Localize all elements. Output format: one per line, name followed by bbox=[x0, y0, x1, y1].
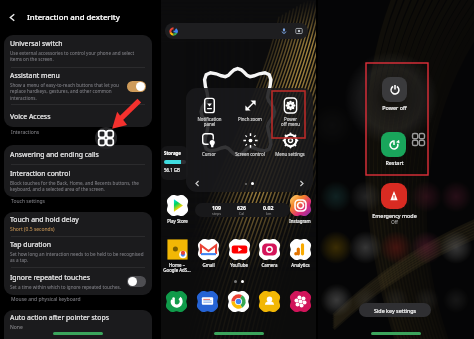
staticText: Restart bbox=[385, 159, 404, 166]
button[interactable]: Assistant menu bbox=[95, 127, 117, 149]
staticText: Cursor bbox=[202, 151, 216, 157]
staticText: Touch and hold delay bbox=[10, 215, 79, 224]
staticText: Show a menu of easy-to-reach buttons tha… bbox=[10, 82, 122, 102]
button[interactable]: Contacts bbox=[259, 291, 280, 312]
button[interactable]: Google bbox=[165, 23, 308, 39]
staticText: Notification panel bbox=[197, 116, 222, 127]
button[interactable]: Power off menu bbox=[272, 97, 308, 127]
staticText: Screen control bbox=[235, 151, 265, 157]
button[interactable]: Auto action after pointer stops bbox=[4, 310, 152, 334]
button[interactable]: Ignore repeated touches bbox=[4, 268, 152, 295]
button[interactable]: Tap duration bbox=[4, 237, 152, 267]
button[interactable]: Answering and ending calls bbox=[4, 145, 152, 164]
button[interactable]: Menu settings bbox=[272, 132, 308, 157]
button[interactable]: Toggle bbox=[127, 81, 146, 92]
staticText: Emergency mode bbox=[372, 212, 417, 219]
staticText: Tap duration bbox=[10, 240, 51, 249]
staticText: Interaction control bbox=[10, 169, 71, 178]
button[interactable]: Assistant menu bbox=[412, 133, 425, 146]
button[interactable]: Power off bbox=[382, 77, 407, 102]
staticText: Menu settings bbox=[275, 151, 305, 157]
staticText: Set a time within which to ignore repeat… bbox=[10, 284, 121, 290]
button[interactable]: Phone bbox=[166, 291, 187, 312]
button[interactable]: Universal switch bbox=[4, 35, 152, 67]
staticText: Gmail bbox=[202, 262, 215, 268]
button[interactable]: Screen control bbox=[232, 132, 268, 157]
staticText: Power off bbox=[382, 104, 407, 111]
button[interactable]: Analytics bbox=[285, 239, 315, 268]
button[interactable]: Next page bbox=[297, 179, 306, 188]
staticText: Cal bbox=[239, 211, 245, 216]
button[interactable]: Chrome bbox=[228, 291, 249, 312]
staticText: Play Store bbox=[167, 218, 188, 224]
button[interactable]: YouTube bbox=[224, 239, 254, 268]
staticText: Instagram bbox=[289, 218, 311, 224]
button[interactable]: Notification panel bbox=[191, 97, 227, 127]
button[interactable]: Navigate up bbox=[0, 0, 156, 34]
button[interactable]: Cursor bbox=[191, 132, 227, 157]
staticText: 109 bbox=[212, 204, 221, 211]
button[interactable]: Gallery bbox=[290, 291, 311, 312]
button[interactable]: Previous page bbox=[193, 179, 202, 188]
staticText: Auto action after pointer stops bbox=[10, 313, 109, 322]
button[interactable]: Camera bbox=[254, 239, 284, 268]
staticText: Assistant menu bbox=[10, 71, 60, 80]
staticText: Interaction and dexterity bbox=[27, 12, 120, 23]
button[interactable]: Home – Google AdS... bbox=[162, 239, 192, 274]
button[interactable]: Messages bbox=[197, 291, 218, 312]
button[interactable]: Touch and hold delay bbox=[4, 212, 152, 236]
staticText: None bbox=[10, 324, 23, 331]
staticText: Set how long an interaction needs to be … bbox=[10, 251, 146, 264]
staticText: steps bbox=[212, 211, 221, 216]
staticText: 0.02 bbox=[263, 204, 274, 211]
staticText: Off bbox=[391, 219, 398, 225]
button[interactable]: Voice Access bbox=[4, 105, 152, 127]
staticText: Home – Google AdS... bbox=[163, 262, 191, 274]
button[interactable]: Voice search bbox=[280, 27, 288, 35]
staticText: Voice Access bbox=[10, 112, 51, 121]
button[interactable]: 109 bbox=[195, 203, 290, 217]
button[interactable]: Restart bbox=[381, 132, 406, 157]
staticText: Universal switch bbox=[10, 39, 63, 48]
staticText: 56.1 GB bbox=[164, 167, 180, 173]
button[interactable]: Pinch zoom bbox=[232, 97, 268, 122]
button[interactable]: Side key settings bbox=[359, 303, 431, 317]
staticText: Storage bbox=[164, 150, 181, 156]
staticText: Pinch zoom bbox=[238, 116, 262, 122]
staticText: Block touches for the Back, Home, and Re… bbox=[10, 180, 146, 193]
staticText: Interactions bbox=[11, 129, 40, 136]
button[interactable]: Storage bbox=[161, 146, 188, 180]
other: Google bbox=[169, 27, 178, 36]
button[interactable]: Emergency mode bbox=[381, 183, 407, 209]
staticText: 626 bbox=[237, 204, 246, 211]
button[interactable]: Google Lens bbox=[295, 27, 303, 35]
staticText: Short (0.5 seconds) bbox=[10, 226, 55, 233]
button[interactable]: Play Store bbox=[162, 195, 192, 224]
staticText: Use external accessories to control your… bbox=[10, 50, 146, 63]
staticText: Answering and ending calls bbox=[10, 150, 99, 159]
button[interactable]: Assistant menu bbox=[4, 68, 152, 104]
staticText: Ignore repeated touches bbox=[10, 273, 91, 282]
staticText: Side key settings bbox=[374, 307, 417, 314]
button[interactable]: Instagram bbox=[285, 195, 315, 224]
staticText: Power off menu bbox=[281, 116, 300, 127]
other: Navigate up bbox=[7, 12, 18, 23]
staticText: Camera bbox=[261, 262, 278, 268]
staticText: YouTube bbox=[230, 262, 248, 268]
button[interactable]: Gmail bbox=[193, 239, 223, 268]
staticText: Touch settings bbox=[11, 198, 46, 205]
button[interactable]: Interaction control bbox=[4, 165, 152, 197]
staticText: Mouse and physical keyboard bbox=[11, 296, 81, 303]
staticText: km bbox=[266, 211, 272, 216]
staticText: Analytics bbox=[291, 262, 310, 268]
button[interactable]: Toggle bbox=[127, 276, 146, 287]
